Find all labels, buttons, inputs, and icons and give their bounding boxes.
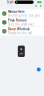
button[interactable]: New message (37, 67, 41, 71)
button[interactable]: Priya Raman (0, 18, 44, 27)
staticText: 9:41 (7, 1, 14, 4)
button[interactable]: Search (35, 5, 37, 7)
button[interactable]: Dana Whitlock (0, 27, 44, 35)
staticText: Priya Raman (8, 19, 27, 22)
staticText: Marcus Hale (8, 10, 25, 13)
staticText: Sent the draft over (8, 23, 34, 26)
staticText: Dana Whitlock (8, 27, 30, 31)
button[interactable]: Compose (39, 5, 42, 7)
button[interactable]: Call card (18, 46, 25, 57)
button[interactable]: Marcus Hale (0, 9, 44, 18)
staticText: Sounds good, see you (8, 14, 40, 17)
staticText: Thanks for the call (8, 31, 32, 35)
